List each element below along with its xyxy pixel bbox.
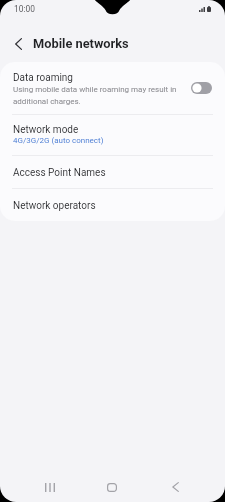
staticText: Network operators xyxy=(13,200,96,212)
staticText: Mobile networks xyxy=(33,36,129,51)
button[interactable]: Network mode xyxy=(0,114,225,156)
staticText: 4G/3G/2G (auto connect) xyxy=(13,136,104,145)
button[interactable]: Network operators xyxy=(0,188,225,220)
staticText: Using mobile data while roaming may resu… xyxy=(13,85,187,106)
button[interactable]: Data roaming xyxy=(0,62,225,114)
staticText: 10:00 xyxy=(14,4,35,14)
button[interactable]: Data roaming switch, off xyxy=(191,82,212,94)
button[interactable]: Back xyxy=(156,474,194,500)
staticText: Access Point Names xyxy=(13,167,106,179)
staticText: Network mode xyxy=(13,124,79,136)
staticText: Data roaming xyxy=(13,72,73,84)
button[interactable]: Access Point Names xyxy=(0,155,225,188)
button[interactable]: Home xyxy=(93,474,131,500)
button[interactable]: Navigate up xyxy=(7,33,29,55)
button[interactable]: Recent apps xyxy=(31,474,69,500)
